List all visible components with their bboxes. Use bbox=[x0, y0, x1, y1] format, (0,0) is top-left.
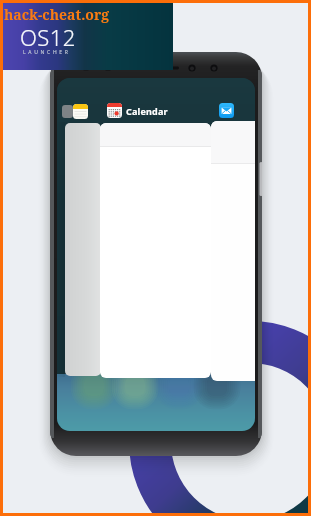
button[interactable]: Mail bbox=[219, 103, 234, 118]
button[interactable]: Calendar app bbox=[100, 123, 211, 378]
staticText: L A U N C H E R bbox=[23, 49, 69, 56]
button[interactable]: Previous app bbox=[65, 123, 101, 376]
staticText: OS12 bbox=[20, 22, 76, 52]
staticText: hack-cheat.org bbox=[4, 5, 110, 24]
button[interactable]: Mail app bbox=[211, 121, 255, 381]
button[interactable]: Calendar bbox=[107, 103, 122, 118]
button[interactable]: Notes bbox=[73, 104, 88, 119]
staticText: Calendar bbox=[126, 105, 168, 117]
